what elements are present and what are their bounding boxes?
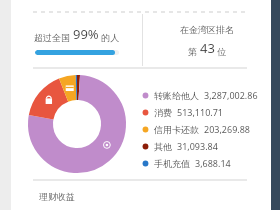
staticText: 3,287,002.86 [204, 89, 258, 101]
staticText: 203,269.88 [204, 123, 251, 135]
staticText: 手机充值 [154, 158, 190, 169]
staticText: 513,110.71 [177, 106, 224, 118]
button[interactable]: 在金湾区排名 [143, 13, 271, 67]
staticText: 第 [188, 45, 200, 57]
button[interactable]: 其他 [142, 140, 267, 152]
staticText: 在金湾区排名 [180, 24, 234, 35]
staticText: 信用卡还款 [154, 124, 199, 135]
button[interactable]: 信用卡还款 [142, 123, 267, 135]
button[interactable]: 消费 [142, 106, 267, 118]
staticText: 31,093.84 [177, 140, 218, 152]
button[interactable]: 超过全国 [11, 13, 142, 67]
staticText: 消费 [154, 107, 172, 118]
staticText: 超过全国 [34, 31, 73, 43]
staticText: 转账给他人 [154, 90, 199, 101]
staticText: 理财收益 [39, 191, 75, 202]
button[interactable]: 转账给他人 [142, 89, 267, 101]
staticText: 99% [73, 25, 99, 43]
button[interactable]: 手机充值 [142, 157, 267, 169]
staticText: 3,688.14 [195, 157, 231, 169]
staticText: 的人 [99, 31, 120, 43]
staticText: 位 [215, 45, 227, 57]
button[interactable]: 支出分类环形图 [28, 75, 126, 173]
staticText: 43 [200, 39, 215, 57]
staticText: 其他 [154, 141, 172, 152]
